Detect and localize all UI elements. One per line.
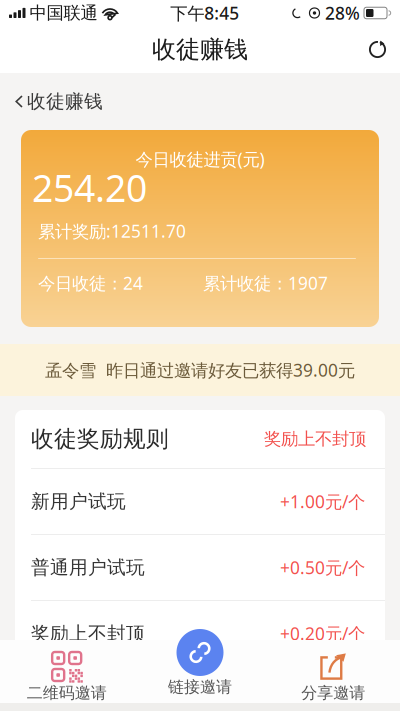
staticText: 累计收徒：1907 (203, 271, 328, 294)
staticText: +0.50元/个 (280, 556, 365, 579)
button[interactable]: 收徒赚钱 (0, 73, 400, 130)
staticText: 28% (325, 1, 360, 24)
staticText: 二维码邀请 (27, 683, 107, 703)
button[interactable]: 刷新 (355, 30, 400, 69)
staticText: +1.00元/个 (280, 490, 365, 513)
staticText: 今日收徒进贡(元) (135, 147, 264, 170)
button[interactable]: 链接邀请 (133, 624, 267, 711)
staticText: 普通用户试玩 (31, 556, 145, 579)
staticText: 累计奖励:12511.70 (38, 219, 186, 242)
button[interactable]: 链接邀请 (176, 629, 223, 676)
staticText: +0.20元/个 (280, 622, 365, 645)
staticText: 收徒赚钱 (27, 90, 103, 113)
staticText: 254.20 (32, 163, 147, 212)
staticText: 奖励上不封顶 (31, 622, 145, 645)
button[interactable]: 二维码邀请 (0, 640, 133, 703)
staticText: 新用户试玩 (31, 490, 126, 513)
button[interactable]: 分享邀请 (267, 640, 400, 703)
staticText: 中国联通 (29, 2, 97, 24)
staticText: 今日收徒：24 (38, 271, 143, 294)
staticText: 收徒赚钱 (152, 35, 248, 64)
staticText: 分享邀请 (301, 683, 365, 703)
staticText: 奖励上不封顶 (264, 428, 366, 450)
staticText: 链接邀请 (168, 677, 232, 697)
staticText: 收徒奖励规则 (31, 425, 169, 453)
staticText: 下午8:45 (170, 1, 239, 24)
staticText: 孟令雪 昨日通过邀请好友已获得39.00元 (45, 358, 355, 381)
